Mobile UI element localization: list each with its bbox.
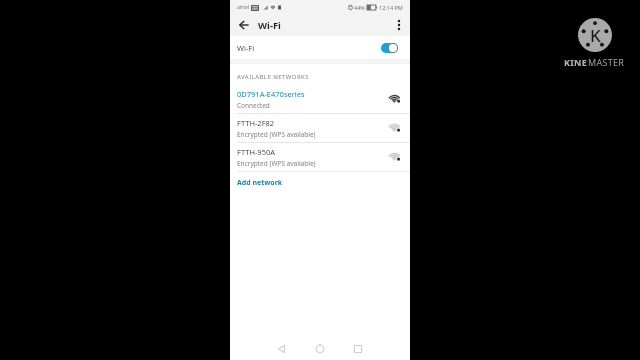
button[interactable]: Home <box>310 339 330 359</box>
staticText: FTTH-950A <box>237 147 276 157</box>
button[interactable]: More options <box>393 19 405 31</box>
button[interactable]: Wi-Fi <box>230 36 410 59</box>
staticText: MASTER <box>588 56 625 68</box>
staticText: 44% <box>354 4 365 11</box>
staticText: Connected <box>237 101 270 110</box>
staticText: KINE <box>564 56 588 68</box>
button[interactable]: FTTH-950A <box>230 143 410 172</box>
button[interactable]: Recents <box>348 339 368 359</box>
staticText: airtel <box>237 4 250 11</box>
button[interactable]: FTTH-2F82 <box>230 114 410 143</box>
button[interactable]: Back <box>236 17 252 33</box>
staticText: K <box>590 24 601 47</box>
staticText: Wi-Fi <box>258 19 281 32</box>
staticText: 0D791A-E470series <box>237 89 305 99</box>
staticText: FTTH-2F82 <box>237 118 275 128</box>
staticText: AVAILABLE NETWORKS <box>237 73 310 81</box>
staticText: Encrypted (WPS available) <box>237 159 316 168</box>
button[interactable]: Add network <box>230 172 410 194</box>
staticText: Encrypted (WPS available) <box>237 130 316 139</box>
staticText: Add network <box>237 178 283 188</box>
staticText: Wi-Fi <box>237 43 255 53</box>
button[interactable]: 0D791A-E470series <box>230 85 410 114</box>
staticText: 12:14 PM <box>379 4 403 11</box>
button[interactable]: Back <box>272 339 292 359</box>
